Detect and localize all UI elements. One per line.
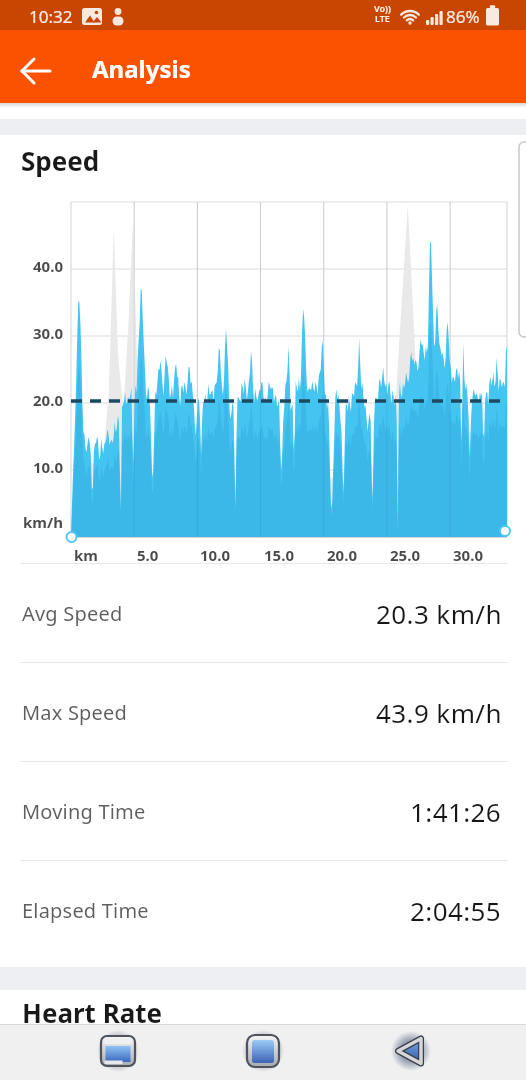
staticText: 43.9 km/h — [376, 695, 502, 730]
staticText: 15.0 — [264, 545, 294, 565]
staticText: 10:32 — [29, 5, 73, 28]
button[interactable] — [14, 44, 58, 88]
button[interactable] — [241, 1029, 285, 1073]
button[interactable]: Moving Time — [0, 762, 526, 860]
staticText: 86% — [446, 5, 480, 28]
staticText: 25.0 — [390, 545, 420, 565]
staticText: 20.0 — [327, 545, 357, 565]
staticText: Speed — [21, 143, 100, 178]
staticText: Vo)) — [374, 2, 391, 14]
staticText: 1:41:26 — [410, 794, 502, 829]
staticText: 30.0 — [33, 323, 63, 341]
staticText: km/h — [23, 512, 63, 530]
button[interactable]: Max Speed — [0, 663, 526, 761]
staticText: 2:04:55 — [410, 893, 502, 928]
button[interactable] — [96, 1029, 140, 1073]
staticText: 30.0 — [453, 545, 483, 565]
staticText: Max Speed — [22, 699, 128, 726]
staticText: 40.0 — [33, 256, 63, 274]
staticText: Avg Speed — [22, 600, 123, 627]
button[interactable]: Avg Speed — [0, 564, 526, 662]
staticText: Elapsed Time — [22, 897, 149, 924]
staticText: 20.0 — [33, 390, 63, 408]
staticText: 10.0 — [200, 545, 230, 565]
button[interactable]: Elapsed Time — [0, 861, 526, 959]
staticText: LTE — [375, 12, 390, 24]
staticText: km — [74, 545, 98, 565]
staticText: Heart Rate — [22, 995, 163, 1029]
staticText: Analysis — [92, 52, 191, 85]
button[interactable] — [387, 1029, 431, 1073]
staticText: 20.3 km/h — [376, 596, 502, 631]
staticText: Moving Time — [22, 798, 146, 825]
staticText: 10.0 — [33, 457, 63, 475]
staticText: 5.0 — [137, 545, 159, 565]
